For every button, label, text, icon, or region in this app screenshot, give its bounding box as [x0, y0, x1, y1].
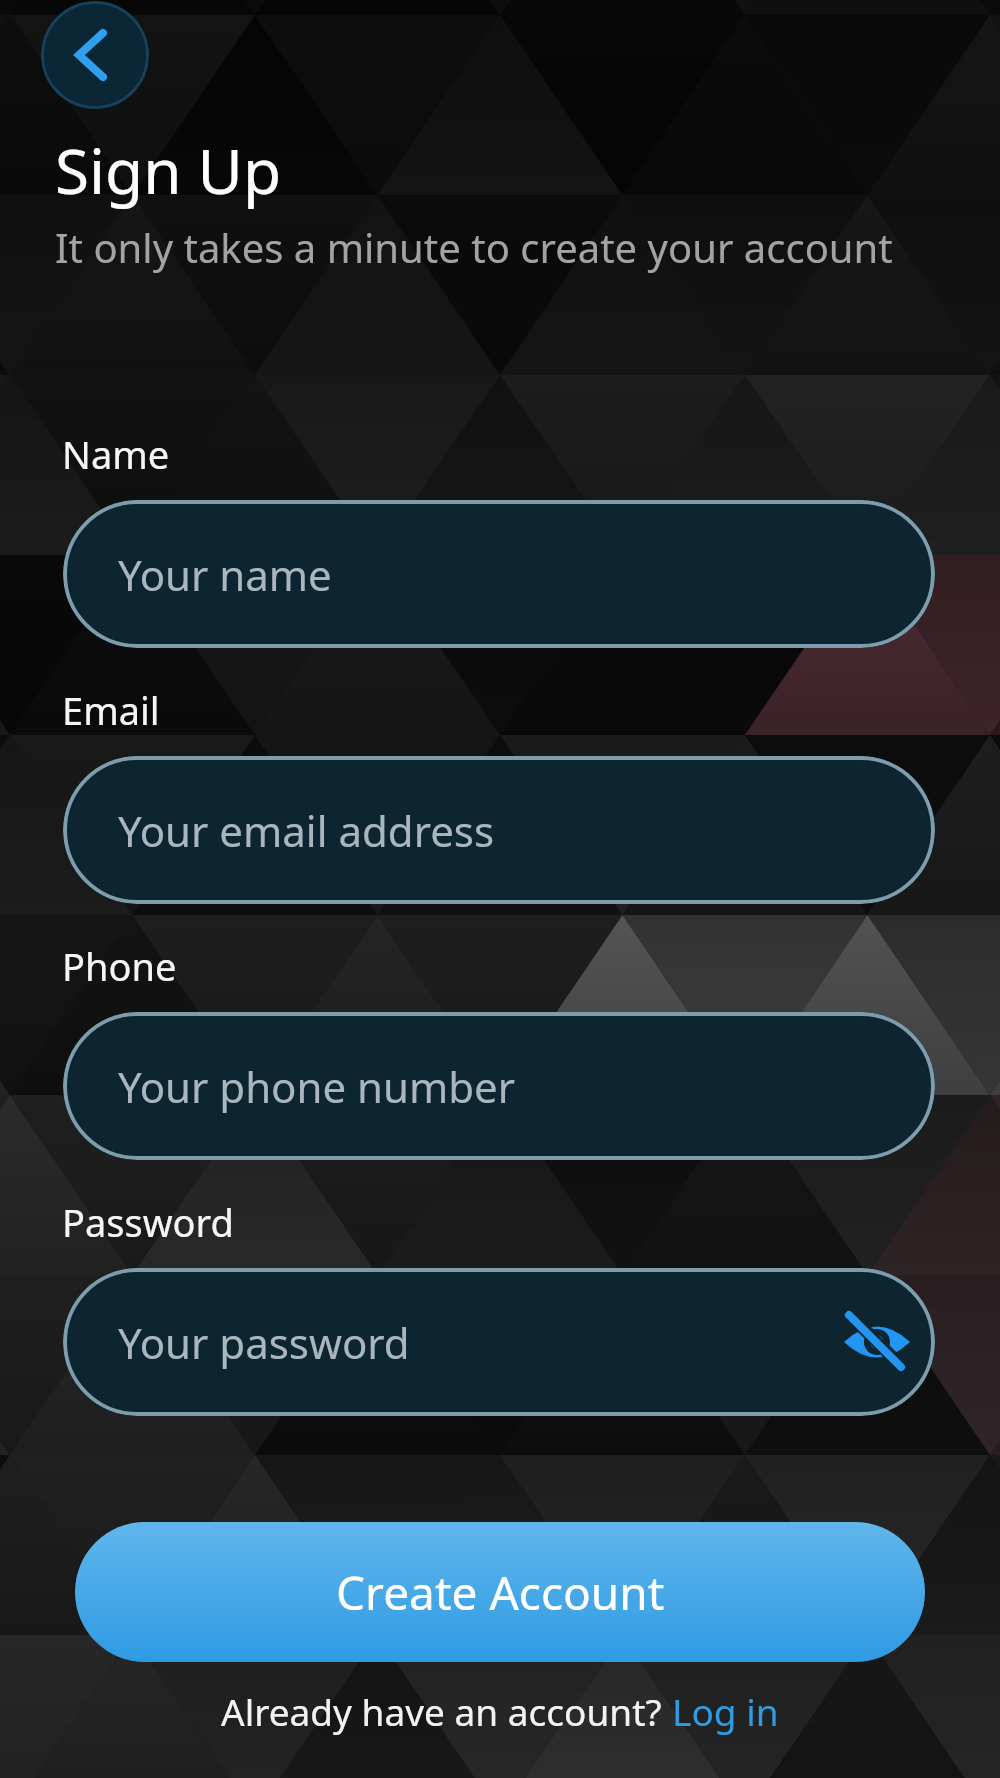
staticText: Your phone number	[118, 1058, 516, 1115]
staticText: Create Account	[336, 1561, 665, 1624]
staticText: Already have an account?	[221, 1686, 672, 1736]
button[interactable]	[41, 1, 149, 109]
staticText: Your name	[118, 546, 332, 603]
staticText: Name	[62, 428, 170, 480]
staticText: Your email address	[118, 802, 495, 859]
button[interactable]: Your password	[63, 1268, 935, 1416]
staticText: Password	[62, 1196, 234, 1248]
staticText: Your password	[118, 1314, 410, 1371]
button[interactable]: Your phone number	[63, 1012, 935, 1160]
button[interactable]: Your name	[63, 500, 935, 648]
button[interactable]: Your email address	[63, 756, 935, 904]
staticText: Phone	[62, 940, 177, 992]
button[interactable]: Log in	[672, 1686, 779, 1736]
button[interactable]: Create Account	[75, 1522, 925, 1662]
staticText: Sign Up	[55, 128, 282, 212]
staticText: Email	[62, 684, 160, 736]
staticText: It only takes a minute to create your ac…	[55, 220, 893, 274]
